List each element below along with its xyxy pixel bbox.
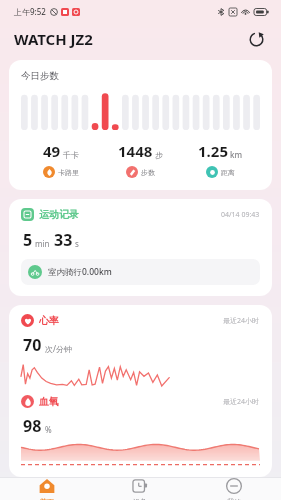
staticText: 千卡 <box>63 150 79 160</box>
staticText: 步数 <box>141 168 155 177</box>
staticText: % <box>45 424 52 435</box>
staticText: 49 <box>43 141 61 161</box>
staticText: 设备 <box>133 497 147 500</box>
staticText: 33 <box>54 229 73 251</box>
staticText: s <box>75 238 79 249</box>
staticText: 卡路里 <box>58 168 79 177</box>
staticText: 运动记录 <box>39 208 79 221</box>
staticText: 1448 <box>118 141 153 161</box>
staticText: min <box>35 238 50 249</box>
staticText: 次/分钟 <box>45 343 72 354</box>
staticText: km <box>230 149 243 160</box>
staticText: 5 <box>23 229 33 251</box>
button[interactable]: 首页 <box>0 478 93 500</box>
staticText: 98 <box>23 415 42 437</box>
staticText: 最近24小时 <box>223 316 260 326</box>
button[interactable]: 1448 <box>100 141 180 178</box>
staticText: 今日步数 <box>21 70 59 82</box>
staticText: WATCH JZ2 <box>14 29 93 49</box>
button[interactable]: 49 <box>21 141 100 178</box>
staticText: 心率 <box>39 314 59 327</box>
staticText: 最近24小时 <box>223 397 260 407</box>
staticText: 步 <box>155 150 163 160</box>
button[interactable]: 设备 <box>93 478 187 500</box>
button[interactable]: Refresh <box>243 26 269 52</box>
staticText: 70 <box>23 334 42 356</box>
staticText: 我的 <box>227 497 241 500</box>
staticText: 血氧 <box>39 395 59 408</box>
staticText: 室内骑行0.00km <box>48 266 112 278</box>
staticText: 首页 <box>40 497 54 500</box>
staticText: 上午9:52 <box>14 6 46 17</box>
staticText: 距离 <box>221 168 235 177</box>
button[interactable]: 我的 <box>187 478 281 500</box>
button[interactable]: 1.25 <box>180 141 260 178</box>
button[interactable]: 室内骑行0.00km <box>21 259 260 285</box>
staticText: 04/14 09:43 <box>221 210 260 220</box>
staticText: 1.25 <box>198 141 228 161</box>
